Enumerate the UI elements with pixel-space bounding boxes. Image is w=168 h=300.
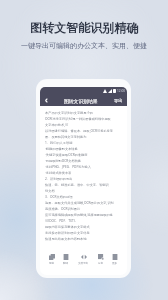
staticText: ·已提取时到OCR文档转换 — [45, 159, 82, 163]
staticText: 翻译 — [63, 261, 69, 264]
staticText: 文字本的技术,可 — [45, 123, 69, 127]
button[interactable]: 文档导出 — [78, 253, 89, 264]
staticText: 提取内容后保存整体的文字格式 — [45, 225, 90, 229]
staticText: 边界、提取文件并生成清晰,OCR图片的文字,识别 — [45, 201, 114, 205]
staticText: 3、OCR文档的处理 — [45, 195, 73, 199]
staticText: 更多 — [112, 261, 118, 264]
staticText: 分享 — [98, 261, 104, 264]
staticText: 高质准确。OCR识别图片 — [45, 207, 81, 211]
staticText: 1、我们的人工智能 — [45, 141, 73, 145]
staticText: ·关键字快速提取OCR的准确度 — [45, 153, 88, 157]
staticText: ·支持格式种类丰富 — [45, 171, 72, 175]
staticText: 应可选择编辑或提取您的整体,选择需要提取的也 — [45, 213, 113, 217]
staticText: 图、发票和其他文字等转换为 — [45, 135, 87, 139]
button[interactable]: Back — [43, 97, 50, 104]
staticText: 导出 — [114, 98, 123, 103]
button[interactable]: 分享 — [98, 253, 104, 264]
staticText: 本产品的文字识别的文字都是小的 — [45, 111, 93, 115]
staticText: 图转文识别结果 — [64, 98, 98, 104]
staticText: ·精确的图像到文本转换 — [45, 147, 78, 151]
staticText: 快速、简、精准手稿、准中、中文字、智能识 — [45, 183, 109, 187]
staticText: 12:00 — [117, 89, 126, 93]
staticText: 图转文智能识别精确 — [30, 20, 138, 35]
button[interactable]: 翻译 — [63, 253, 69, 264]
staticText: ·支持PNG、JPEG、PDF等为输入 — [45, 165, 91, 169]
staticText: 支持多语种识别的图片文字信息 — [45, 231, 90, 235]
button[interactable]: 复制 — [49, 253, 55, 264]
staticText: 复制 — [49, 261, 55, 264]
staticText: 以对图进行编辑、修改本、提取,OCR可将手持等 — [45, 129, 113, 133]
staticText: 别文档 — [45, 189, 55, 193]
staticText: 快速导出结果文本内容到本地 — [45, 237, 87, 241]
staticText: 一键导出可编辑的办公文本、实用、便捷 — [21, 41, 147, 50]
staticText: 文档导出 — [78, 261, 89, 264]
button[interactable]: 更多 — [112, 253, 118, 264]
staticText: OCR(光学字符识别)是一种从图像或扫描中提取 — [45, 117, 111, 121]
button[interactable]: 导出 — [113, 98, 124, 103]
staticText: 2、识别图的的导出 — [45, 177, 73, 181]
staticText: 可(DOC、PDF、TXT)。 — [45, 219, 78, 223]
